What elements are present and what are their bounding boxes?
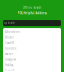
button[interactable]: Aberdeen xyxy=(3,30,61,34)
staticText: Glasgow xyxy=(5,58,16,61)
staticText: Dundee xyxy=(5,47,17,50)
staticText: Exeter xyxy=(5,52,13,56)
button[interactable]: Exeter xyxy=(3,52,61,56)
staticText: Halifax xyxy=(5,63,13,67)
button[interactable]: Ipswich xyxy=(3,69,61,72)
button[interactable]: Dundee xyxy=(3,47,61,50)
staticText: Cardiff xyxy=(5,41,14,45)
staticText: Offline Search xyxy=(22,6,41,9)
staticText: POL Helpful Address xyxy=(17,11,46,15)
staticText: Search xyxy=(7,21,15,25)
button[interactable]: Cardiff xyxy=(3,41,61,45)
staticText: Bristol xyxy=(5,36,14,39)
button[interactable]: Glasgow xyxy=(3,58,61,61)
button[interactable]: Bristol xyxy=(3,36,61,39)
button[interactable]: Halifax xyxy=(3,63,61,67)
button[interactable]: Search xyxy=(0,20,64,26)
staticText: Aberdeen xyxy=(5,30,20,34)
staticText: Ipswich xyxy=(5,69,15,72)
